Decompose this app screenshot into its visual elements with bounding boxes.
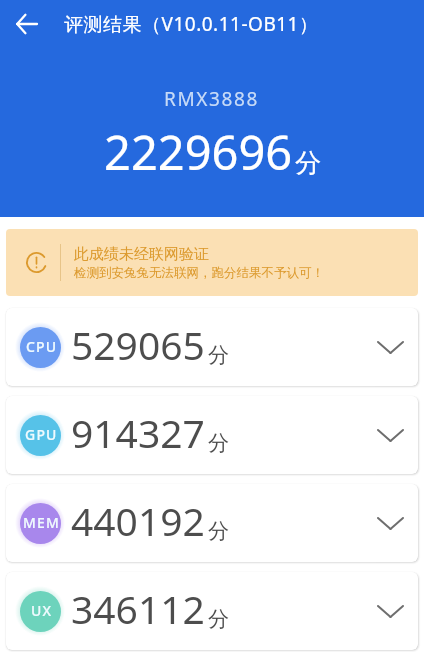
- staticText: 2229696: [104, 120, 293, 184]
- staticText: RMX3888: [164, 86, 259, 112]
- staticText: UX: [31, 601, 53, 620]
- staticText: 分: [208, 606, 229, 632]
- staticText: CPU: [26, 337, 58, 356]
- button[interactable]: Expand GPU details: [370, 416, 408, 454]
- staticText: 评测结果（V10.0.11-OB11）: [64, 11, 319, 37]
- button[interactable]: Back: [0, 0, 52, 48]
- staticText: 440192: [71, 494, 205, 547]
- staticText: 529065: [71, 318, 205, 371]
- staticText: 分: [208, 518, 229, 544]
- staticText: 914327: [71, 406, 205, 459]
- staticText: 分: [208, 342, 229, 368]
- staticText: 分: [295, 147, 321, 180]
- staticText: 346112: [71, 582, 205, 635]
- button[interactable]: MEM: [6, 484, 418, 562]
- button[interactable]: Expand CPU details: [370, 328, 408, 366]
- staticText: GPU: [25, 425, 58, 444]
- staticText: 分: [208, 430, 229, 456]
- button[interactable]: Expand UX details: [370, 592, 408, 630]
- staticText: MEM: [23, 513, 61, 532]
- button[interactable]: GPU: [6, 396, 418, 474]
- staticText: 此成绩未经联网验证: [74, 245, 209, 264]
- button[interactable]: Expand MEM details: [370, 504, 408, 542]
- button[interactable]: UX: [6, 572, 418, 650]
- staticText: 检测到安兔兔无法联网，跑分结果不予认可！: [74, 265, 324, 281]
- button[interactable]: CPU: [6, 308, 418, 386]
